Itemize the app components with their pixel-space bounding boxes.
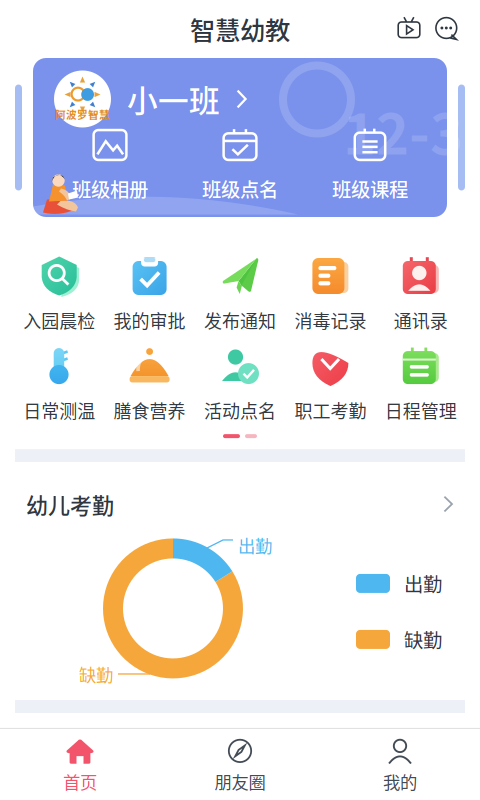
staticText: 12-3 (343, 89, 463, 171)
staticText: 膳食营养 (114, 397, 186, 423)
staticText: 出勤 (404, 569, 442, 597)
button[interactable]: 消毒记录 (285, 254, 376, 333)
staticText: 出勤 (238, 532, 272, 557)
staticText: 朋友圈 (214, 769, 265, 794)
staticText: 智慧幼教 (190, 11, 290, 47)
staticText: 消毒记录 (294, 307, 366, 333)
staticText: 通讯录 (394, 307, 448, 333)
staticText: 日常测温 (23, 397, 95, 423)
staticText: 缺勤 (79, 661, 113, 686)
staticText: 我的 (383, 769, 417, 794)
staticText: 日程管理 (385, 397, 457, 423)
button[interactable]: 幼儿考勤 (0, 462, 480, 538)
staticText: 活动点名 (204, 397, 276, 423)
button[interactable]: 朋友圈 (160, 729, 320, 800)
staticText: 小一班 (127, 77, 220, 121)
staticText: 班级点名 (202, 174, 278, 202)
button[interactable]: 直播 (393, 10, 425, 48)
button[interactable]: 消息 (431, 10, 463, 48)
button[interactable]: 膳食营养 (104, 344, 195, 423)
staticText: 职工考勤 (294, 397, 366, 423)
staticText: 班级课程 (332, 174, 408, 202)
staticText: 阿波罗智慧 (55, 106, 110, 122)
staticText: 首页 (63, 769, 97, 794)
button[interactable]: 职工考勤 (285, 344, 376, 423)
button[interactable]: 我的 (320, 729, 480, 800)
button[interactable]: 日程管理 (376, 344, 466, 423)
staticText: 我的审批 (114, 307, 186, 333)
button[interactable]: 班级课程 (305, 127, 435, 202)
button[interactable]: 通讯录 (376, 254, 466, 333)
button[interactable]: 日常测温 (14, 344, 104, 423)
staticText: 幼儿考勤 (26, 488, 114, 520)
button[interactable]: 活动点名 (195, 344, 285, 423)
staticText: 缺勤 (404, 625, 442, 653)
button[interactable]: 小一班 (127, 77, 248, 121)
button[interactable]: 我的审批 (104, 254, 195, 333)
button[interactable]: 入园晨检 (14, 254, 104, 333)
button[interactable]: 发布通知 (195, 254, 285, 333)
button[interactable]: 班级点名 (175, 127, 305, 202)
staticText: 发布通知 (204, 307, 276, 333)
staticText: 班级相册 (72, 174, 148, 202)
button[interactable]: 班级相册 (45, 127, 175, 202)
staticText: 入园晨检 (23, 307, 95, 333)
button[interactable]: 首页 (0, 729, 160, 800)
